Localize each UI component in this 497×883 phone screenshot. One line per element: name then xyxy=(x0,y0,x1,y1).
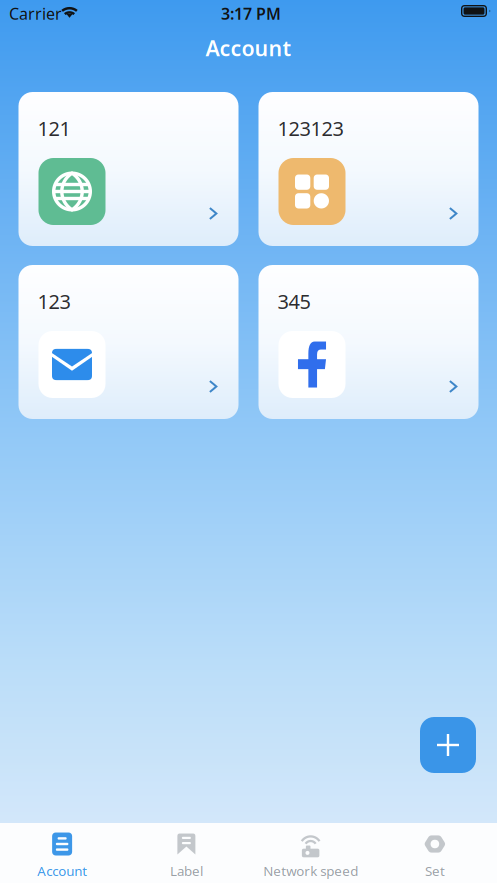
button[interactable]: 121 xyxy=(18,92,238,246)
staticText: 123123 xyxy=(277,115,343,142)
button[interactable]: 345 xyxy=(258,265,478,419)
button[interactable]: 123123 xyxy=(258,92,478,246)
staticText: Label xyxy=(170,862,203,880)
staticText: Network speed xyxy=(263,862,358,880)
button[interactable]: Network speed xyxy=(248,823,373,883)
staticText: Account xyxy=(205,34,291,62)
button[interactable]: Account xyxy=(0,823,124,883)
staticText: 123 xyxy=(37,288,70,315)
staticText: 345 xyxy=(277,288,310,315)
staticText: Set xyxy=(425,862,445,880)
button[interactable]: Label xyxy=(124,823,248,883)
staticText: 3:17 PM xyxy=(221,3,281,24)
button[interactable]: 123 xyxy=(18,265,238,419)
staticText: Account xyxy=(37,862,87,880)
staticText: 121 xyxy=(37,115,70,142)
button[interactable]: Add xyxy=(420,717,476,773)
button[interactable]: Set xyxy=(373,823,497,883)
staticText: Carrier xyxy=(9,3,62,24)
